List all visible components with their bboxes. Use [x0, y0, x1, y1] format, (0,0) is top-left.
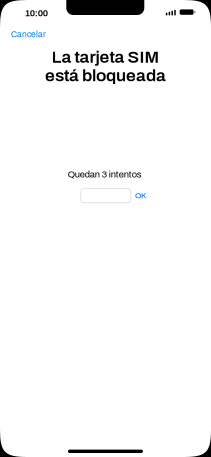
button[interactable]: OK [132, 189, 148, 203]
staticText: OK [135, 191, 146, 200]
staticText: 10:00 [25, 8, 48, 18]
staticText: Cancelar [11, 30, 46, 39]
staticText: está bloqueada [45, 66, 166, 85]
staticText: Quedan 3 intentos [68, 169, 142, 179]
button[interactable]: Cancelar [11, 26, 57, 42]
staticText: La tarjeta SIM [51, 48, 159, 66]
